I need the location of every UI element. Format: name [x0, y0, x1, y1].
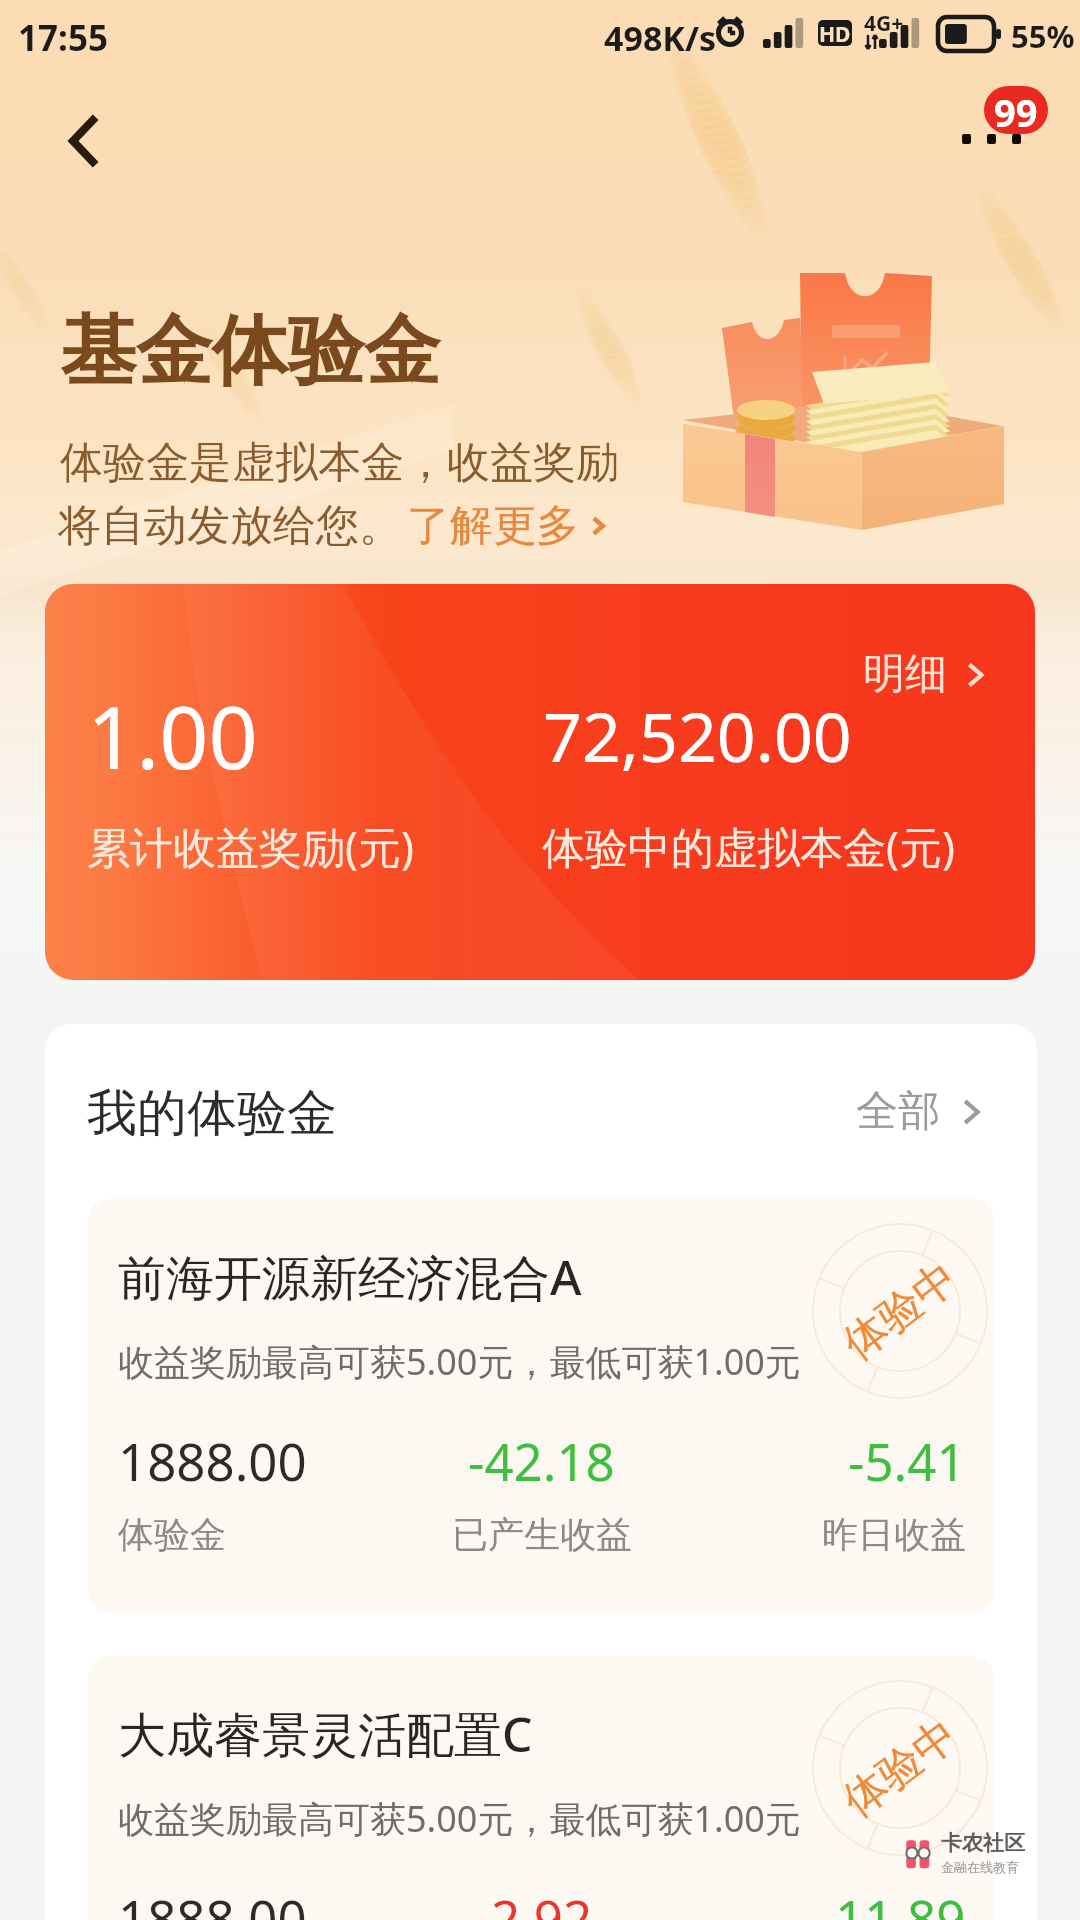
button[interactable]: 明细 — [45, 584, 1035, 980]
staticText: 收益奖励最高可获5.00元，最低可获1.00元 — [118, 1794, 801, 1843]
staticText: -5.41 — [848, 1426, 966, 1495]
staticText: 4G+ — [864, 9, 904, 38]
staticText: 99 — [994, 86, 1038, 134]
staticText: HD — [819, 20, 851, 46]
staticText: 体验中的虚拟本金(元) — [542, 817, 955, 876]
staticText: 11.89 — [835, 1883, 966, 1920]
staticText: 金融在线教育 — [941, 1859, 1019, 1875]
staticText: 2.92 — [491, 1883, 593, 1920]
staticText: 全部 — [856, 1085, 940, 1138]
staticText: 将自动发放给您。 — [58, 499, 402, 553]
staticText: 体验中 — [833, 1251, 968, 1371]
staticText: 17:55 — [18, 14, 108, 62]
staticText: 1.00 — [87, 677, 258, 794]
button[interactable]: 全部 — [856, 1085, 992, 1138]
staticText: 明细 — [863, 648, 947, 701]
staticText: 已产生收益 — [452, 1512, 632, 1557]
staticText: 498K/s — [604, 15, 717, 61]
button[interactable]: Back — [43, 97, 131, 185]
staticText: 昨日收益 — [822, 1512, 966, 1557]
staticText: 体验中 — [833, 1708, 968, 1828]
staticText: 了解更多 — [407, 499, 579, 553]
staticText: 大成睿景灵活配置C — [118, 1701, 533, 1767]
staticText: 卡农社区 — [941, 1830, 1025, 1856]
button[interactable]: 明细 — [863, 648, 995, 701]
staticText: 我的体验金 — [87, 1082, 337, 1145]
button[interactable]: More options — [938, 78, 1056, 184]
staticText: 体验金 — [118, 1512, 226, 1557]
staticText: 体验金是虚拟本金，收益奖励 — [60, 436, 619, 490]
staticText: 前海开源新经济混合A — [118, 1244, 582, 1310]
staticText: 1888.00 — [118, 1883, 307, 1920]
button[interactable]: 体验中 — [88, 1199, 994, 1612]
staticText: 累计收益奖励(元) — [87, 817, 414, 876]
staticText: 收益奖励最高可获5.00元，最低可获1.00元 — [118, 1337, 801, 1386]
staticText: 基金体验金 — [60, 304, 440, 400]
button[interactable]: 体验中 — [88, 1656, 994, 1920]
staticText: 55% — [1011, 15, 1075, 57]
staticText: -42.18 — [468, 1426, 615, 1495]
staticText: 72,520.00 — [543, 689, 852, 782]
button[interactable]: 了解更多 — [407, 499, 613, 553]
staticText: 1888.00 — [118, 1426, 307, 1495]
